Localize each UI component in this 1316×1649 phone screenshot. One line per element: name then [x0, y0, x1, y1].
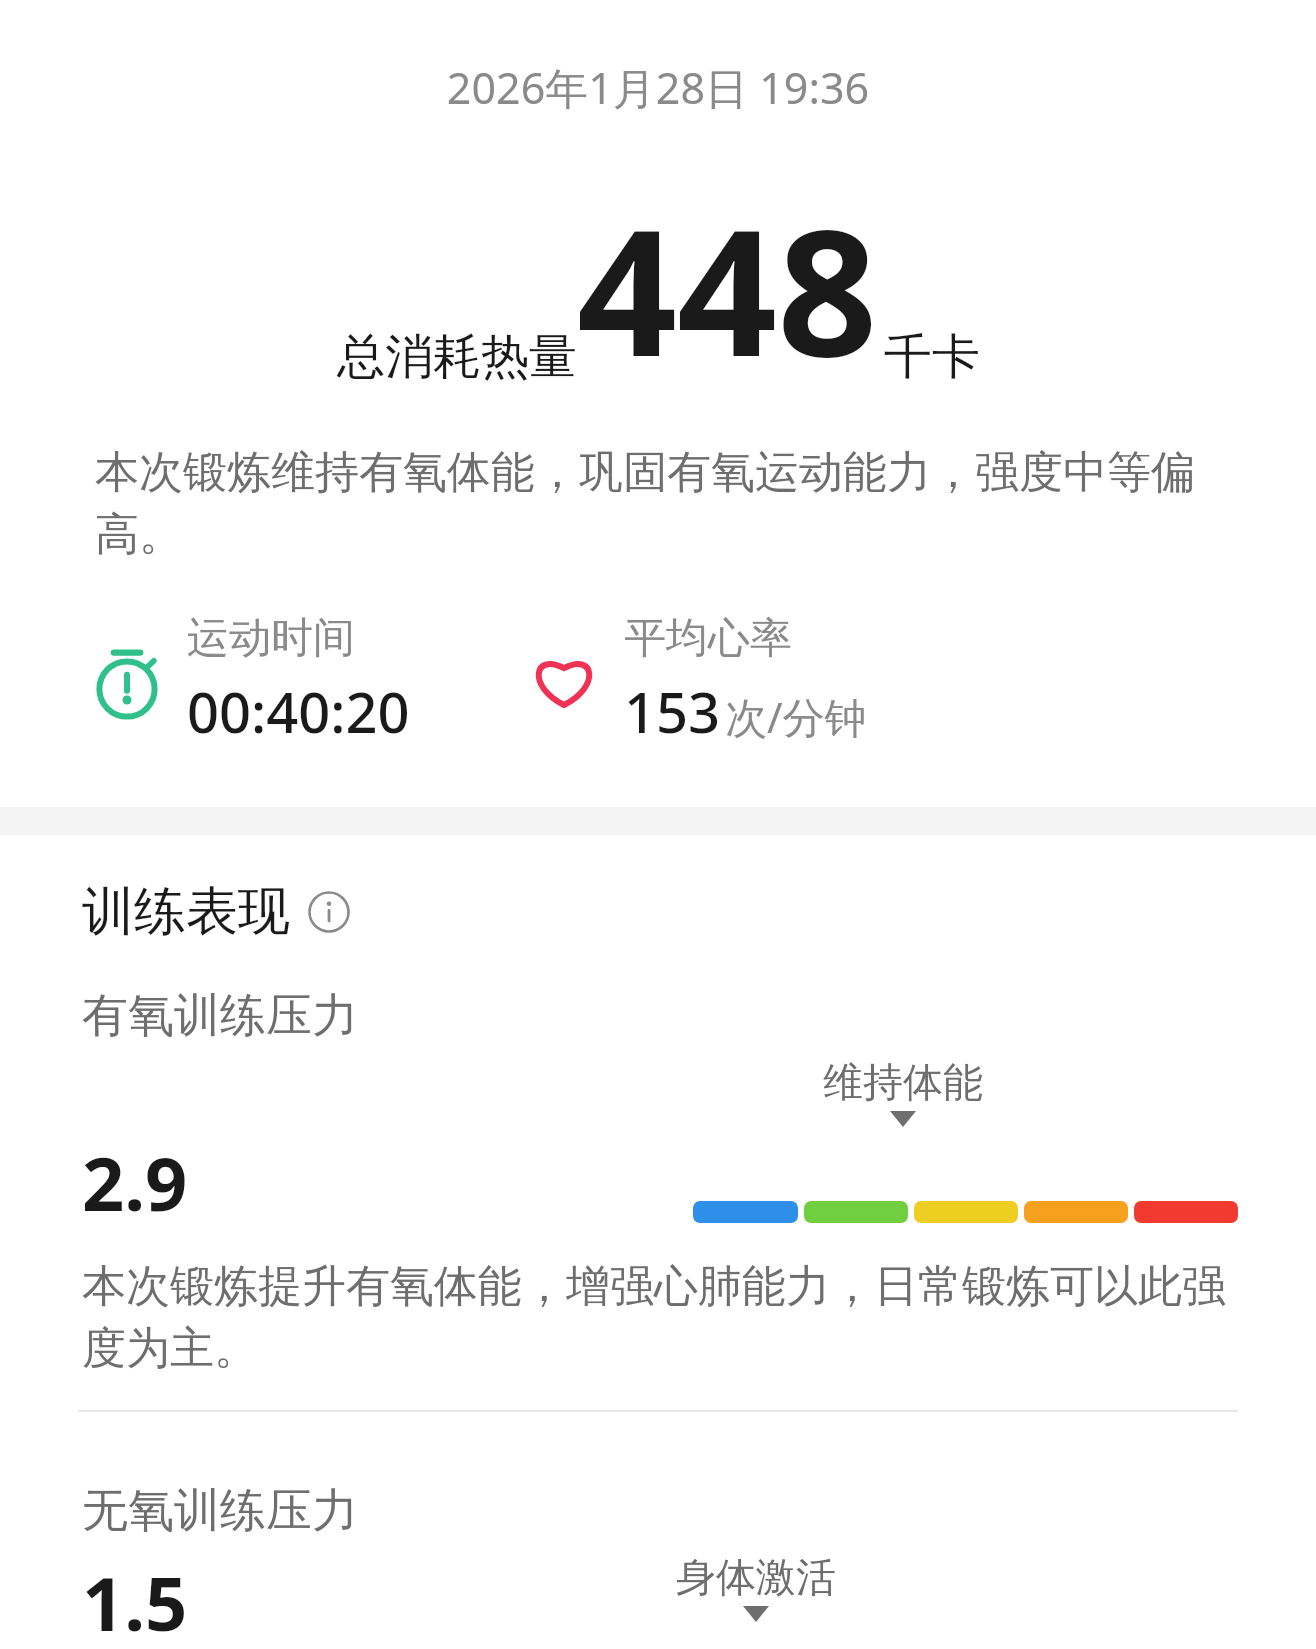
button[interactable]: About training performance [308, 891, 350, 933]
staticText: 身体激活 [676, 1552, 836, 1602]
staticText: 总消耗热量 [337, 327, 577, 387]
staticText: 00:40:20 [187, 673, 410, 749]
staticText: 训练表现 [82, 879, 290, 945]
staticText: 本次锻炼提升有氧体能，增强心肺能力，日常锻炼可以此强度为主。 [82, 1259, 1238, 1376]
staticText: 千卡 [884, 327, 980, 387]
staticText: 平均心率 [624, 612, 792, 665]
staticText: 维持体能 [823, 1057, 983, 1107]
staticText: 2026年1月28日 19:36 [0, 58, 1316, 117]
staticText: 本次锻炼维持有氧体能，巩固有氧运动能力，强度中等偏高。 [95, 445, 1236, 562]
other: Average heart rate [522, 639, 606, 723]
staticText: 无氧训练压力 [82, 1482, 358, 1540]
staticText: 448 [577, 169, 878, 407]
staticText: 次/分钟 [725, 688, 867, 745]
staticText: 有氧训练压力 [82, 987, 358, 1045]
staticText: 2.9 [82, 1132, 188, 1233]
staticText: 153 [624, 673, 721, 749]
other: Duration [85, 639, 169, 723]
staticText: 运动时间 [187, 612, 355, 665]
staticText: 1.5 [82, 1552, 188, 1649]
